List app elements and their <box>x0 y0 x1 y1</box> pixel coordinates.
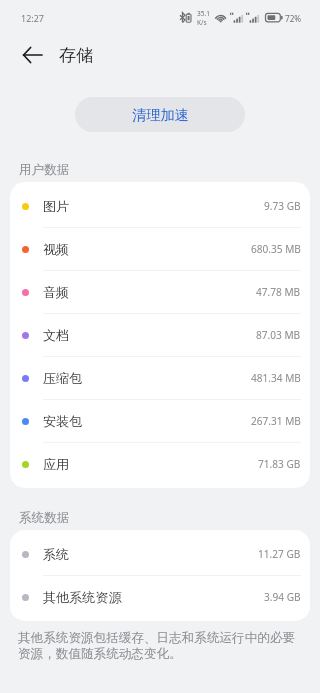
button[interactable]: 音频 <box>10 271 310 313</box>
staticText: 图片 <box>43 198 70 215</box>
button[interactable]: 安装包 <box>10 400 310 442</box>
staticText: 音频 <box>43 284 70 301</box>
staticText: 文档 <box>43 327 70 344</box>
button[interactable]: 视频 <box>10 228 310 270</box>
button[interactable]: 压缩包 <box>10 357 310 399</box>
staticText: 安装包 <box>43 413 83 430</box>
staticText: 清理加速 <box>132 106 189 124</box>
staticText: K/s <box>197 18 207 27</box>
staticText: 35.1 <box>197 9 210 18</box>
staticText: 481.34 MB <box>251 371 301 385</box>
button[interactable]: 应用 <box>10 443 310 485</box>
staticText: 压缩包 <box>43 370 83 387</box>
button[interactable]: 清理加速 <box>75 97 245 132</box>
staticText: 12:27 <box>21 12 45 24</box>
button[interactable]: 其他系统资源 <box>10 576 310 618</box>
staticText: 9.73 GB <box>264 199 301 213</box>
staticText: 11.27 GB <box>258 547 301 561</box>
staticText: 71.83 GB <box>258 457 301 471</box>
staticText: 其他系统资源包括缓存、日志和系统运行中的必要资源，数值随系统动态变化。 <box>18 630 298 662</box>
staticText: 用户数据 <box>19 162 70 178</box>
staticText: 存储 <box>59 45 93 66</box>
staticText: 72% <box>285 13 302 24</box>
staticText: 视频 <box>43 241 70 258</box>
button[interactable]: 图片 <box>10 185 310 227</box>
staticText: 应用 <box>43 456 70 473</box>
staticText: 87.03 MB <box>256 328 301 342</box>
button[interactable]: 文档 <box>10 314 310 356</box>
staticText: 系统数据 <box>19 510 70 526</box>
staticText: 267.31 MB <box>251 414 301 428</box>
staticText: 680.35 MB <box>251 242 301 256</box>
staticText: 其他系统资源 <box>43 589 122 606</box>
staticText: 47.78 MB <box>256 285 301 299</box>
staticText: 3.94 GB <box>264 590 301 604</box>
button[interactable]: 系统 <box>10 533 310 575</box>
staticText: 系统 <box>43 546 70 563</box>
button[interactable]: Back <box>14 37 50 73</box>
